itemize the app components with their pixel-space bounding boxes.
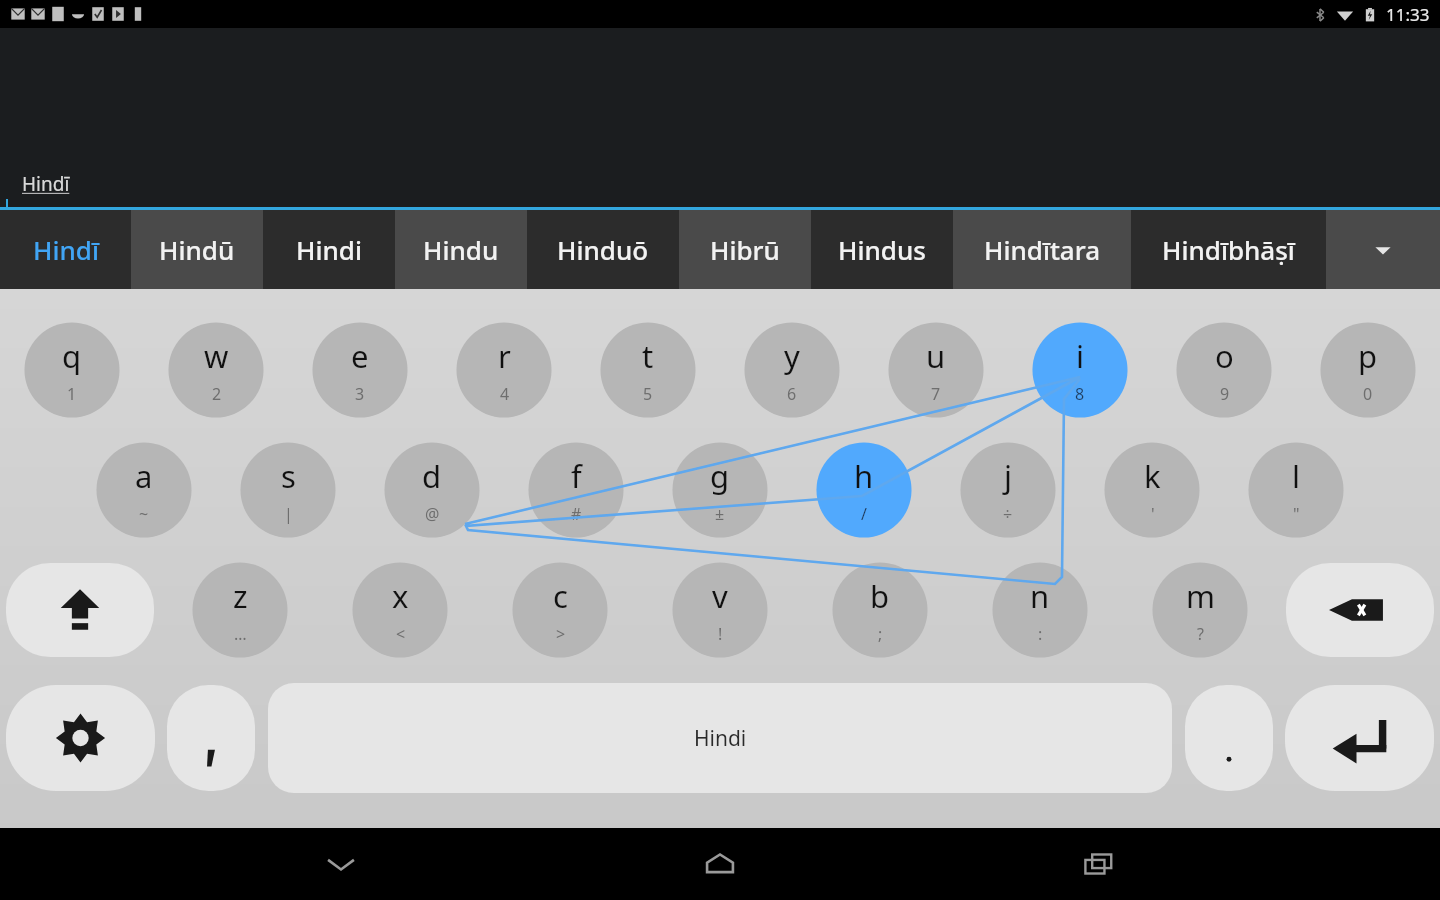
button[interactable]: d xyxy=(360,441,504,539)
staticText: / xyxy=(861,503,867,525)
button[interactable]: i xyxy=(1008,321,1152,419)
button[interactable]: Hindī xyxy=(0,210,131,289)
button[interactable]: Home xyxy=(682,828,758,900)
button[interactable]: w xyxy=(144,321,288,419)
staticText: b xyxy=(870,575,890,617)
staticText: m xyxy=(1186,575,1215,617)
button[interactable]: Hibrū xyxy=(679,210,811,289)
button[interactable]: Hindus xyxy=(811,210,953,289)
staticText: z xyxy=(233,575,248,617)
staticText: Hindu xyxy=(423,232,499,267)
staticText: 1 xyxy=(67,383,77,405)
staticText: 2 xyxy=(212,383,222,405)
button[interactable]: j xyxy=(936,441,1080,539)
staticText: v xyxy=(712,575,728,617)
button[interactable]: e xyxy=(288,321,432,419)
staticText: d xyxy=(422,455,442,497)
button[interactable]: More suggestions xyxy=(1326,210,1440,289)
button[interactable]: y xyxy=(720,321,864,419)
staticText: x xyxy=(392,575,409,617)
staticText: e xyxy=(351,335,369,377)
button[interactable]: Hindi xyxy=(263,210,395,289)
staticText: Hindībhāṣī xyxy=(1162,232,1295,267)
staticText: 8 xyxy=(1075,383,1085,405)
staticText: f xyxy=(571,455,582,497)
staticText: o xyxy=(1215,335,1234,377)
staticText: Hindus xyxy=(838,232,926,267)
staticText: 4 xyxy=(500,383,510,405)
staticText: > xyxy=(556,623,566,645)
staticText: ' xyxy=(1151,503,1155,525)
staticText: u xyxy=(926,335,946,377)
button[interactable]: Shift xyxy=(6,563,154,657)
staticText: Hindū xyxy=(159,232,235,267)
button[interactable]: n xyxy=(960,561,1120,659)
button[interactable]: t xyxy=(576,321,720,419)
button[interactable]: s xyxy=(216,441,360,539)
button[interactable]: u xyxy=(864,321,1008,419)
button[interactable]: r xyxy=(432,321,576,419)
button[interactable]: g xyxy=(648,441,792,539)
staticText: # xyxy=(571,503,582,525)
button[interactable]: Hindībhāṣī xyxy=(1131,210,1326,289)
staticText: @ xyxy=(425,503,440,525)
staticText: q xyxy=(62,335,82,377)
button[interactable]: v xyxy=(640,561,800,659)
staticText: < xyxy=(396,623,406,645)
staticText: 3 xyxy=(355,383,365,405)
staticText: Hibrū xyxy=(710,232,780,267)
button[interactable]: l xyxy=(1224,441,1368,539)
staticText: ÷ xyxy=(1003,503,1013,525)
button[interactable]: Hindū xyxy=(131,210,263,289)
button[interactable]: Hide keyboard xyxy=(303,828,379,900)
staticText: y xyxy=(784,335,800,377)
button[interactable]: Hindītara xyxy=(953,210,1131,289)
staticText: g xyxy=(710,455,730,497)
button[interactable]: Hindu xyxy=(395,210,527,289)
staticText: h xyxy=(854,455,874,497)
button[interactable]: Enter xyxy=(1285,685,1434,791)
button[interactable]: Backspace xyxy=(1286,563,1434,657)
button[interactable]: Hindi xyxy=(268,683,1172,793)
staticText: ! xyxy=(718,623,723,645)
button[interactable]: Hindī xyxy=(0,162,1440,210)
staticText: j xyxy=(1004,455,1012,497)
staticText: ± xyxy=(715,503,725,525)
button[interactable]: m xyxy=(1120,561,1280,659)
staticText: l xyxy=(1292,455,1300,497)
button[interactable]: Settings xyxy=(6,685,155,791)
button[interactable]: Recent apps xyxy=(1061,828,1137,900)
staticText: Hinduō xyxy=(557,232,649,267)
staticText: ; xyxy=(878,623,883,645)
staticText: p xyxy=(1358,335,1378,377)
staticText: w xyxy=(204,335,229,377)
button[interactable]: x xyxy=(320,561,480,659)
button[interactable]: Period xyxy=(1185,685,1273,791)
staticText: ~ xyxy=(139,503,149,525)
button[interactable]: o xyxy=(1152,321,1296,419)
staticText: : xyxy=(1038,623,1043,645)
staticText: Hindītara xyxy=(984,232,1101,267)
staticText: 6 xyxy=(787,383,797,405)
button[interactable]: b xyxy=(800,561,960,659)
button[interactable]: Hinduō xyxy=(527,210,679,289)
button[interactable]: c xyxy=(480,561,640,659)
button[interactable]: z xyxy=(160,561,320,659)
staticText: s xyxy=(281,455,296,497)
button[interactable]: h xyxy=(792,441,936,539)
staticText: a xyxy=(135,455,153,497)
button[interactable]: a xyxy=(72,441,216,539)
button[interactable]: k xyxy=(1080,441,1224,539)
staticText: r xyxy=(498,335,511,377)
staticText: … xyxy=(234,623,247,645)
staticText: 9 xyxy=(1220,383,1230,405)
staticText: Hindi xyxy=(296,232,362,267)
staticText: " xyxy=(1293,503,1300,525)
staticText: 0 xyxy=(1363,383,1373,405)
button[interactable]: f xyxy=(504,441,648,539)
button[interactable]: Comma xyxy=(167,685,255,791)
button[interactable]: p xyxy=(1296,321,1440,419)
staticText: | xyxy=(284,503,293,525)
button[interactable]: q xyxy=(0,321,144,419)
staticText: t xyxy=(642,335,654,377)
